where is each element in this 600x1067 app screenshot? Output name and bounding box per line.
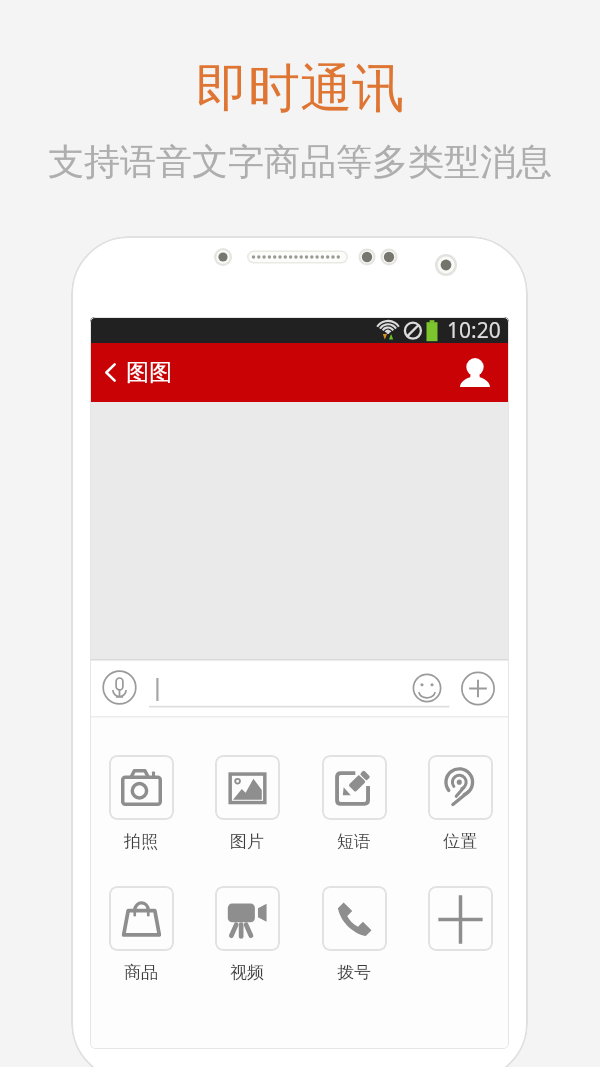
- button[interactable]: 拨号: [321, 886, 387, 983]
- button[interactable]: More options: [427, 886, 493, 951]
- staticText: 图片: [230, 831, 264, 852]
- button[interactable]: 图图: [105, 343, 509, 402]
- button[interactable]: Profile: [460, 358, 490, 387]
- button[interactable]: 视频: [214, 886, 280, 983]
- button[interactable]: Emoji: [413, 674, 441, 702]
- button[interactable]: 位置: [427, 755, 493, 852]
- staticText: 位置: [443, 831, 477, 852]
- button[interactable]: 商品: [108, 886, 174, 983]
- staticText: 短语: [337, 831, 371, 852]
- staticText: 商品: [124, 962, 158, 983]
- staticText: 支持语音文字商品等多类型消息: [48, 139, 552, 184]
- button[interactable]: Voice input: [103, 671, 136, 704]
- button[interactable]: 拍照: [108, 755, 174, 852]
- button[interactable]: Add attachment: [462, 672, 494, 704]
- staticText: 视频: [230, 962, 264, 983]
- staticText: 拍照: [124, 831, 158, 852]
- staticText: 10:20: [447, 317, 501, 342]
- button[interactable]: Message input: [149, 669, 409, 707]
- button[interactable]: 短语: [321, 755, 387, 852]
- button[interactable]: 图片: [214, 755, 280, 852]
- staticText: 拨号: [337, 962, 371, 983]
- staticText: 即时通讯: [196, 56, 404, 122]
- staticText: 图图: [126, 358, 172, 387]
